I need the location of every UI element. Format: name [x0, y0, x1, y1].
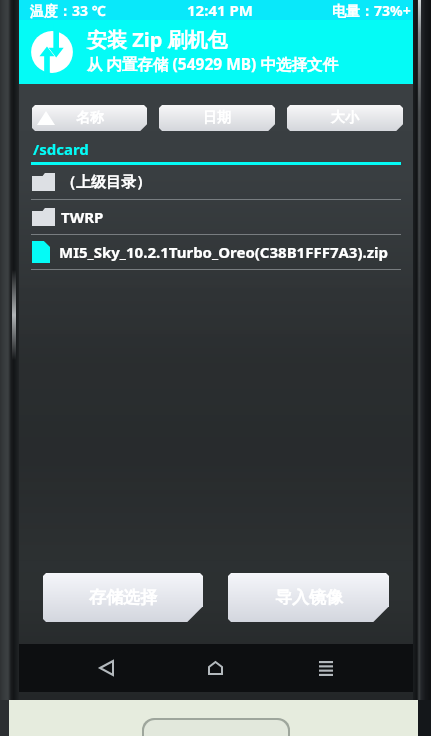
staticText: 日期 [203, 109, 231, 127]
staticText: 名称 [76, 109, 104, 127]
button[interactable]: Recents [303, 645, 349, 691]
button[interactable]: MI5_Sky_10.2.1Turbo_Oreo(C38B1FFF7A3).zi… [19, 235, 413, 270]
staticText: 导入镜像 [275, 587, 343, 608]
staticText: 大小 [331, 109, 359, 127]
button[interactable]: （上级目录） [19, 165, 413, 200]
staticText: 从 内置存储 (54929 MB) 中选择文件 [87, 53, 338, 74]
button[interactable]: 导入镜像 [228, 573, 389, 622]
staticText: /sdcard [33, 139, 89, 159]
staticText: MI5_Sky_10.2.1Turbo_Oreo(C38B1FFF7A3).zi… [59, 242, 389, 262]
button[interactable]: Back [83, 645, 129, 691]
staticText: 存储选择 [89, 587, 157, 608]
button[interactable]: 存储选择 [43, 573, 203, 622]
button[interactable]: 大小 [287, 105, 403, 131]
staticText: 12:41 PM [187, 0, 253, 20]
staticText: （上级目录） [61, 173, 151, 192]
staticText: 温度：33 ℃ [30, 1, 106, 20]
button[interactable]: 日期 [159, 105, 275, 131]
staticText: 电量：73%+ [332, 1, 411, 20]
staticText: TWRP [61, 207, 104, 227]
button[interactable]: 名称 [32, 105, 147, 131]
button[interactable]: Home [192, 645, 238, 691]
staticText: 安装 Zip 刷机包 [87, 26, 228, 53]
button[interactable]: TWRP [19, 200, 413, 235]
